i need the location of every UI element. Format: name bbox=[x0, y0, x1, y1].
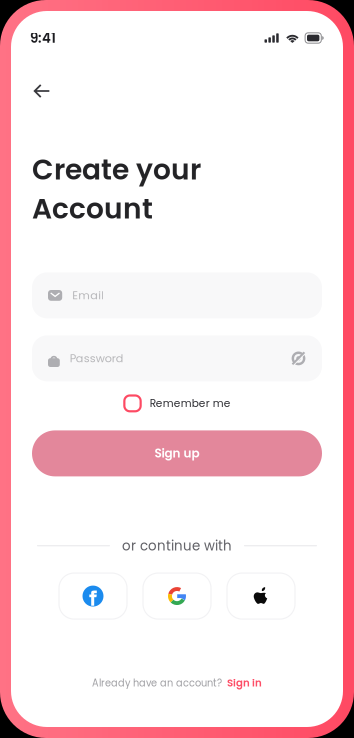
button[interactable]: Continue with Apple bbox=[227, 573, 295, 619]
staticText: or continue with bbox=[122, 536, 232, 555]
staticText: Create your Account bbox=[32, 150, 201, 228]
button[interactable]: Sign up bbox=[32, 430, 322, 476]
staticText: Password bbox=[70, 351, 124, 366]
staticText: 9:41 bbox=[30, 29, 56, 47]
button[interactable]: Remember me bbox=[123, 390, 231, 416]
staticText: Remember me bbox=[150, 396, 231, 411]
button[interactable]: Continue with Facebook bbox=[59, 573, 127, 619]
staticText: Sign up bbox=[154, 445, 199, 462]
button[interactable]: Already have an account? bbox=[92, 672, 262, 694]
staticText: Already have an account? bbox=[92, 676, 222, 690]
button[interactable]: Continue with Google bbox=[143, 573, 211, 619]
button[interactable]: Back bbox=[22, 73, 62, 109]
button[interactable]: Show password bbox=[291, 351, 306, 366]
staticText: Email bbox=[72, 288, 104, 303]
staticText: Sign in bbox=[227, 676, 262, 690]
